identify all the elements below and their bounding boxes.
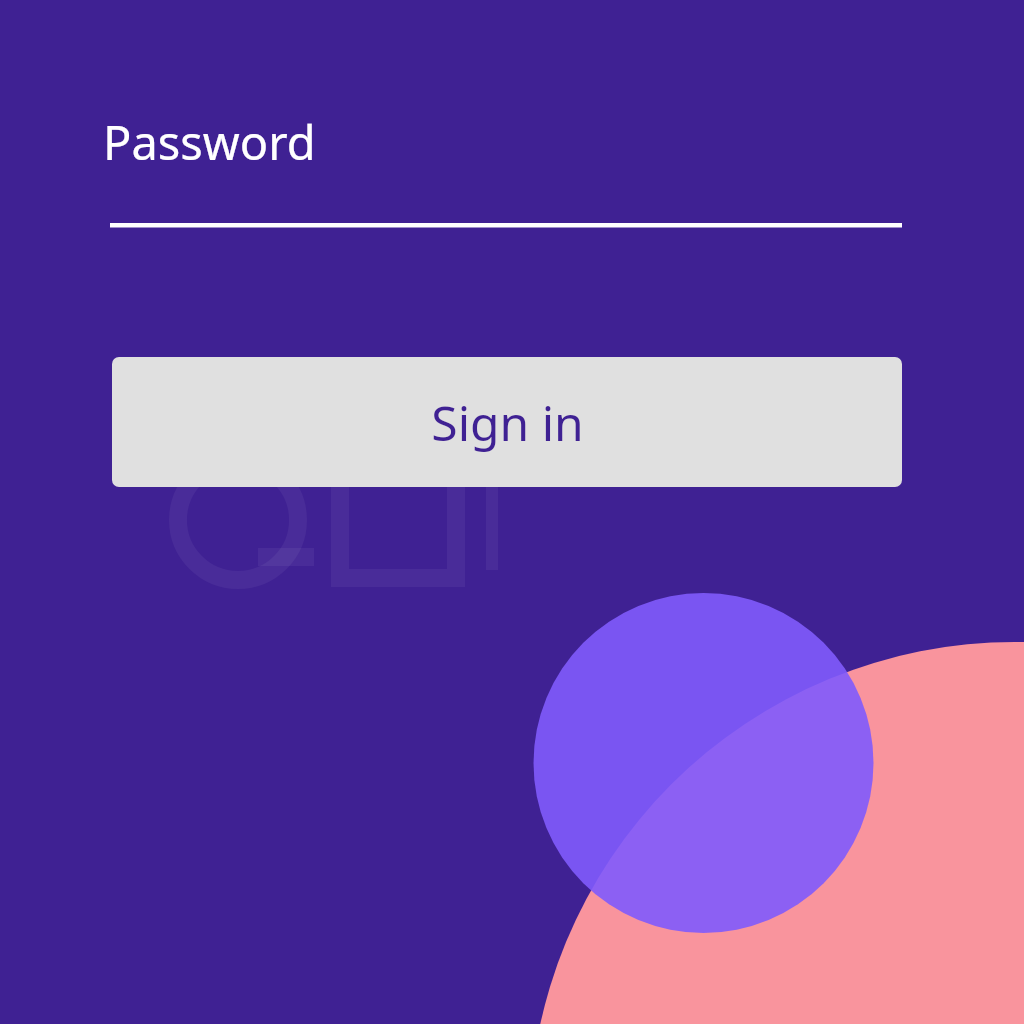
button[interactable]: Password: [103, 110, 316, 174]
staticText: Password: [103, 110, 316, 174]
button[interactable]: Sign in: [112, 357, 902, 487]
staticText: Sign in: [431, 390, 584, 455]
